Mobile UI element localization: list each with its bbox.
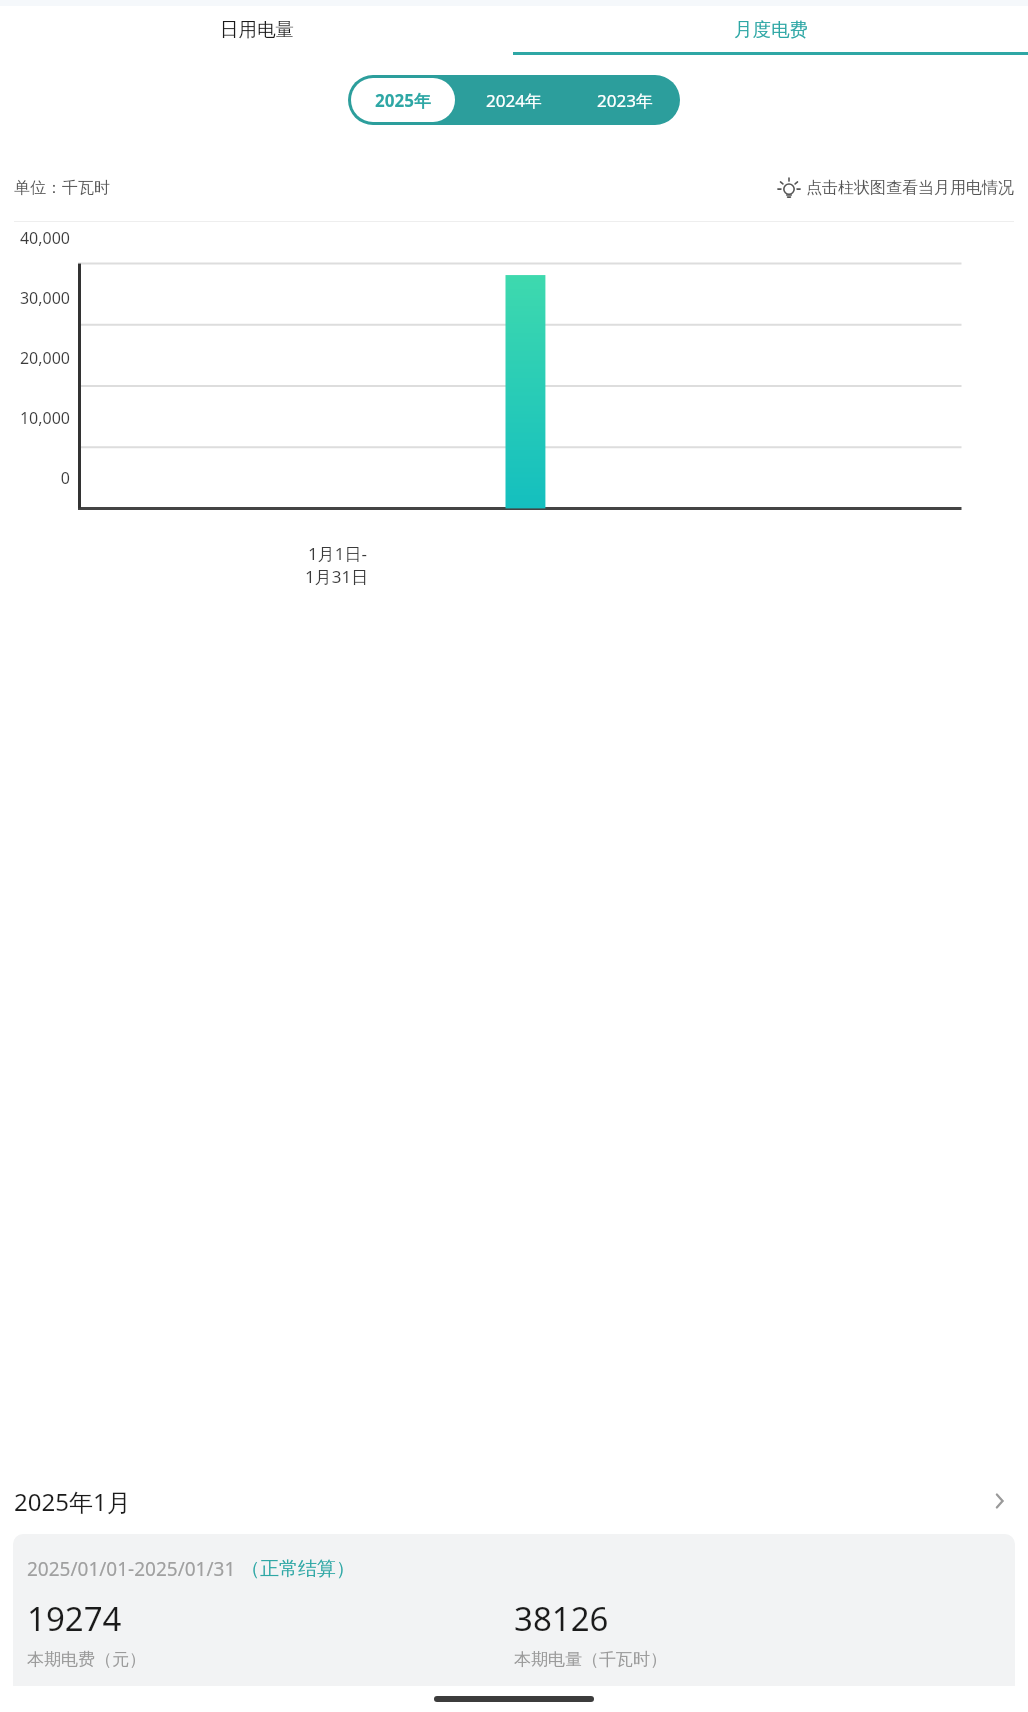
button[interactable]: 2025年: [351, 78, 455, 122]
staticText: 10,000: [19, 407, 70, 429]
button[interactable]: 2023年: [569, 75, 680, 125]
staticText: 本期电费（元）: [27, 1649, 146, 1670]
staticText: 月度电费: [734, 18, 808, 41]
staticText: 日用电量: [220, 18, 294, 41]
button[interactable]: 提示: [778, 177, 1014, 199]
other: 提示: [778, 177, 800, 199]
staticText: （正常结算）: [241, 1557, 355, 1581]
staticText: 2025年1月: [14, 1485, 131, 1518]
staticText: 单位：千瓦时: [14, 178, 110, 198]
button[interactable]: 2024年: [458, 75, 569, 125]
staticText: 2023年: [597, 89, 653, 112]
staticText: 1月1日-: [308, 542, 367, 565]
staticText: 40,000: [19, 227, 70, 249]
staticText: 点击柱状图查看当月用电情况: [806, 178, 1014, 198]
button[interactable]: 日用电量: [0, 6, 514, 52]
staticText: 本期电量（千瓦时）: [514, 1649, 667, 1670]
other: 查看详情: [988, 1488, 1014, 1514]
staticText: 2025/01/01-2025/01/31: [27, 1556, 241, 1582]
button[interactable]: 2025/01/01-2025/01/31: [13, 1534, 1015, 1686]
staticText: 0: [60, 467, 70, 489]
button[interactable]: 2025年1月: [0, 1468, 1028, 1534]
button[interactable]: 月度电费: [514, 6, 1028, 52]
staticText: 38126: [514, 1596, 609, 1641]
staticText: 20,000: [19, 347, 70, 369]
staticText: 30,000: [19, 287, 70, 309]
staticText: 1月31日: [305, 565, 369, 588]
staticText: 19274: [27, 1596, 122, 1641]
staticText: 2025年: [375, 89, 431, 112]
staticText: 2024年: [486, 89, 542, 112]
